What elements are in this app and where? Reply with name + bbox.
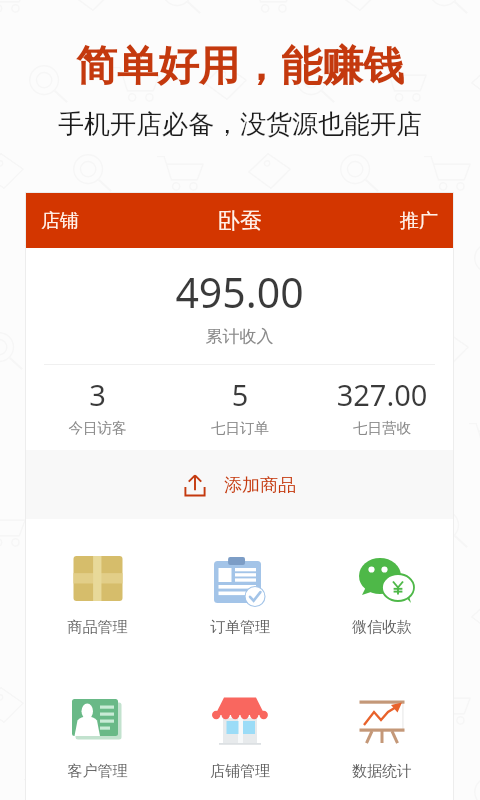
button[interactable]: Add product [26, 450, 453, 519]
button[interactable]: 卧蚕 [169, 193, 311, 248]
staticText: 店铺 [41, 209, 79, 233]
button[interactable]: 微信收款 [311, 553, 453, 643]
staticText: 客户管理 [26, 762, 169, 781]
staticText: 店铺管理 [169, 762, 311, 781]
staticText: 微信收款 [311, 618, 453, 637]
staticText: 累计收入 [26, 326, 453, 347]
button[interactable]: 5 [169, 375, 311, 435]
staticText: 数据统计 [311, 762, 453, 781]
button[interactable]: 客户管理 [26, 697, 169, 787]
staticText: 商品管理 [26, 618, 169, 637]
button[interactable]: 店铺 [26, 193, 169, 248]
staticText: 推广 [400, 209, 438, 233]
button[interactable]: 327.00 [311, 375, 453, 435]
button[interactable]: 推广 [311, 193, 453, 248]
staticText: 327.00 [311, 375, 453, 414]
staticText: 添加商品 [224, 474, 296, 497]
staticText: 卧蚕 [218, 207, 262, 235]
staticText: 3 [26, 375, 169, 414]
button[interactable]: 3 [26, 375, 169, 435]
other: Add product [183, 473, 207, 497]
staticText: 手机开店必备，没货源也能开店 [0, 108, 480, 141]
staticText: 七日订单 [169, 419, 311, 437]
staticText: 5 [169, 375, 311, 414]
button[interactable]: 订单管理 [169, 553, 311, 643]
staticText: 七日营收 [311, 419, 453, 437]
staticText: 订单管理 [169, 618, 311, 637]
staticText: 495.00 [26, 264, 453, 320]
button[interactable]: 商品管理 [26, 553, 169, 643]
staticText: 今日访客 [26, 419, 169, 437]
staticText: 简单好用，能赚钱 [0, 41, 480, 93]
button[interactable]: 数据统计 [311, 697, 453, 787]
button[interactable]: 店铺管理 [169, 697, 311, 787]
